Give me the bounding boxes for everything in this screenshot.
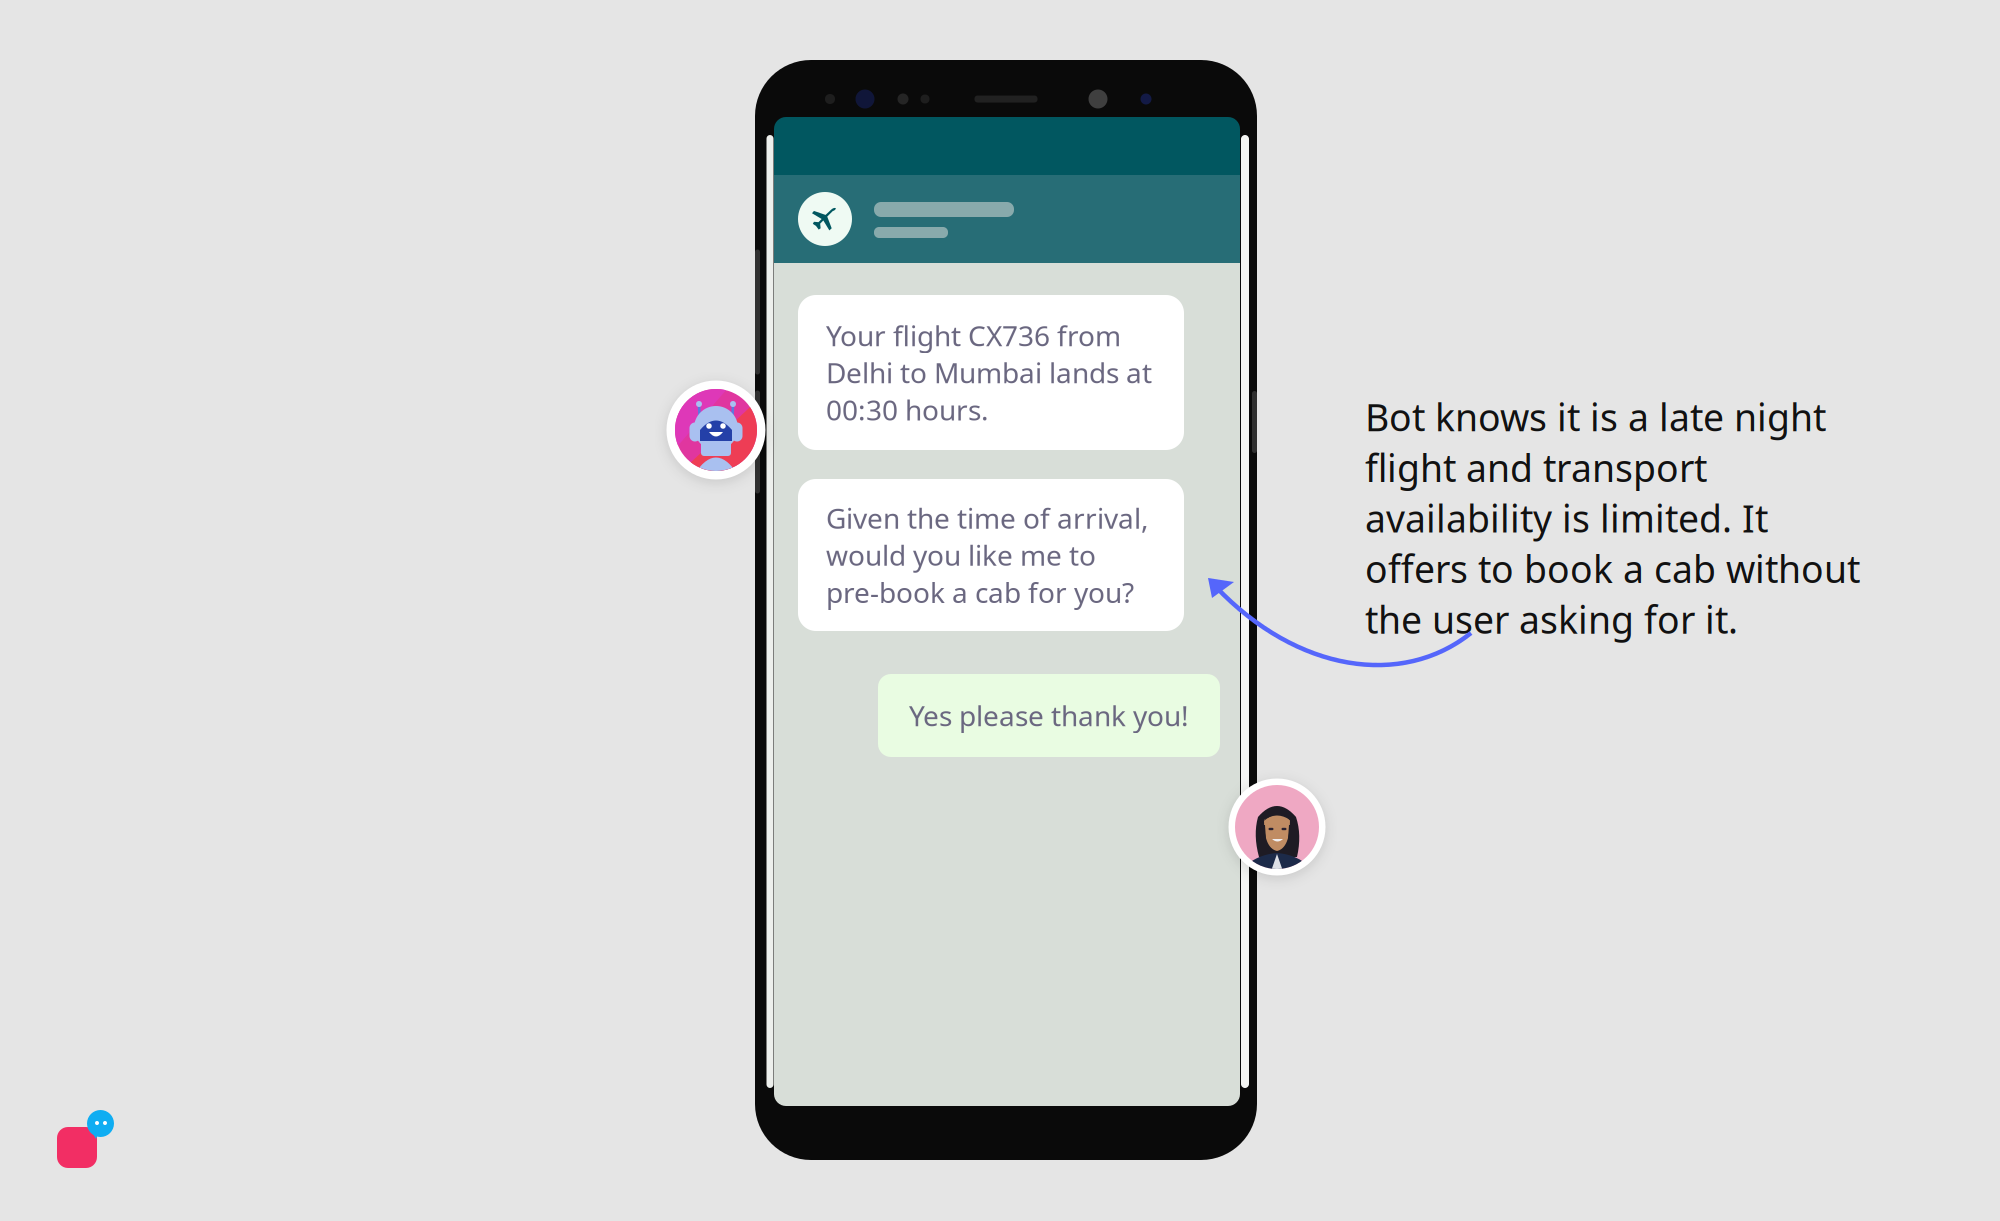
button[interactable]: Assistant bot [666,380,765,479]
staticText: Your flight CX736 from Delhi to Mumbai l… [826,317,1152,428]
button[interactable]: Your flight CX736 from Delhi to Mumbai l… [798,295,1184,450]
button[interactable]: Flight assistant [798,192,852,246]
staticText: Yes please thank you! [909,697,1189,734]
staticText: Bot knows it is a late night flight and … [1365,392,1860,644]
button[interactable]: Yes please thank you! [878,674,1220,757]
button[interactable]: Your profile [1228,778,1325,875]
staticText: Given the time of arrival, would you lik… [826,499,1149,611]
button[interactable]: Given the time of arrival, would you lik… [798,479,1184,631]
